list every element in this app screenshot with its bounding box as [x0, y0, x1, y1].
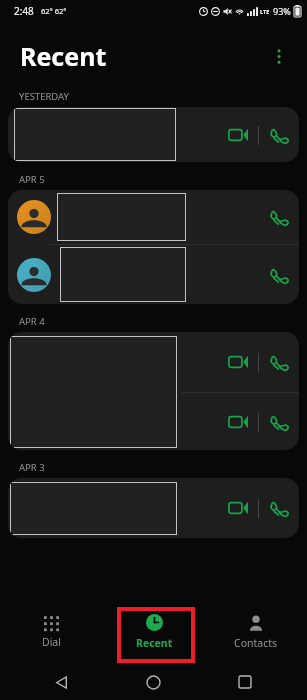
button[interactable]: Dial — [0, 600, 103, 664]
staticText: APR 5 — [19, 173, 45, 186]
staticText: Recent — [136, 636, 173, 650]
button[interactable]: Contacts — [205, 600, 307, 664]
button[interactable]: Call — [259, 255, 299, 295]
staticText: 62° 62° — [41, 6, 67, 16]
staticText: APR 4 — [19, 315, 45, 328]
staticText: Dial — [42, 635, 61, 649]
button[interactable]: Call — [259, 488, 299, 528]
button[interactable]: Video call — [218, 402, 258, 442]
staticText: 93% — [273, 5, 291, 17]
button[interactable]: Call — [259, 197, 299, 237]
button[interactable]: Call — [8, 190, 299, 304]
button[interactable]: Video call — [218, 488, 258, 528]
staticText: LTE — [260, 8, 270, 15]
staticText: Contacts — [234, 636, 278, 650]
button[interactable]: Video call — [8, 107, 299, 162]
button[interactable]: Home — [107, 664, 199, 700]
button[interactable]: Recent apps — [199, 664, 291, 700]
staticText: 2:48 — [14, 4, 34, 18]
button[interactable]: More options — [264, 41, 294, 71]
button[interactable]: Video call — [8, 478, 299, 538]
button[interactable]: Video call — [8, 332, 299, 450]
button[interactable]: Call — [259, 342, 299, 382]
button[interactable]: Video call — [218, 115, 258, 155]
button[interactable]: Recent — [103, 600, 205, 664]
button[interactable]: Call — [259, 402, 299, 442]
button[interactable]: Call — [259, 115, 299, 155]
button[interactable]: Video call — [218, 342, 258, 382]
staticText: Recent — [20, 39, 107, 73]
staticText: YESTERDAY — [19, 90, 69, 103]
staticText: APR 3 — [19, 461, 45, 474]
button[interactable]: Back — [16, 664, 107, 700]
